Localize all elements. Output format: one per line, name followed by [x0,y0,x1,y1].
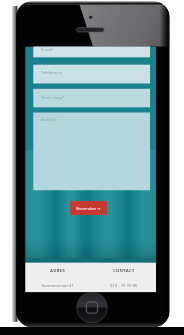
staticText: Verzenden → [76,206,101,211]
button[interactable]: CONTACT [91,268,156,289]
staticText: E-mail [41,47,53,52]
staticText: 010 - 73 39 86 [110,283,138,289]
staticText: ADRES [50,268,66,274]
staticText: Telefoon nr [41,70,63,75]
staticText: CONTACT [113,268,135,274]
button[interactable]: ADRES [25,268,90,289]
staticText: Teemanstraat 41 [41,283,74,289]
button[interactable]: Verzenden → [70,201,107,215]
staticText: Bericht* [41,117,57,122]
staticText: Onderwerp* [41,95,65,100]
